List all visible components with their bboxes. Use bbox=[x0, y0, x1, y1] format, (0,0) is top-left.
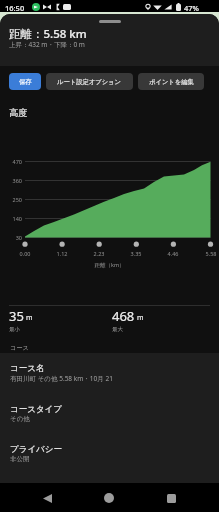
button[interactable]: コース名 bbox=[0, 361, 219, 385]
staticText: 250 bbox=[0, 196, 22, 203]
button[interactable]: ルート設定オプション bbox=[46, 73, 133, 90]
staticText: m bbox=[26, 313, 33, 323]
button[interactable]: コースタイプ bbox=[0, 402, 219, 425]
staticText: 30 bbox=[0, 234, 22, 241]
staticText: 0.00 bbox=[13, 250, 37, 257]
staticText: プライバシー bbox=[10, 444, 62, 455]
button[interactable]: ポイントを編集 bbox=[138, 73, 204, 90]
staticText: 5.58 bbox=[199, 250, 219, 257]
button[interactable]: Home bbox=[95, 484, 123, 512]
staticText: 470 bbox=[0, 158, 22, 165]
staticText: 16:50 bbox=[5, 3, 25, 13]
staticText: 3.35 bbox=[124, 250, 148, 257]
staticText: 1.12 bbox=[50, 250, 74, 257]
button[interactable]: Back bbox=[33, 484, 61, 512]
staticText: 上昇：432 m・下降：0 m bbox=[9, 40, 85, 49]
staticText: m bbox=[137, 313, 144, 323]
staticText: 468 bbox=[112, 307, 135, 325]
staticText: 保存 bbox=[19, 78, 32, 86]
staticText: 最大 bbox=[112, 326, 123, 333]
staticText: 有田川町 その他 5.58 km・10月 21 bbox=[10, 374, 113, 383]
staticText: コース bbox=[10, 344, 29, 352]
staticText: 140 bbox=[0, 215, 22, 222]
staticText: 2.23 bbox=[87, 250, 111, 257]
staticText: 35 bbox=[9, 307, 24, 325]
staticText: ポイントを編集 bbox=[149, 78, 194, 86]
staticText: コース名 bbox=[10, 363, 45, 374]
staticText: ルート設定オプション bbox=[57, 78, 122, 86]
staticText: 最小 bbox=[9, 326, 20, 333]
staticText: 距離（km） bbox=[0, 261, 219, 269]
button[interactable]: Recent apps bbox=[157, 484, 185, 512]
staticText: 47% bbox=[184, 3, 199, 13]
staticText: コースタイプ bbox=[10, 404, 62, 415]
staticText: 高度 bbox=[9, 107, 28, 119]
staticText: 非公開 bbox=[10, 455, 30, 463]
staticText: 距離：5.58 km bbox=[9, 26, 87, 42]
staticText: 360 bbox=[0, 177, 22, 184]
button[interactable]: 保存 bbox=[9, 73, 41, 90]
staticText: その他 bbox=[10, 415, 30, 423]
button[interactable]: プライバシー bbox=[0, 442, 219, 465]
staticText: 4.46 bbox=[161, 250, 185, 257]
